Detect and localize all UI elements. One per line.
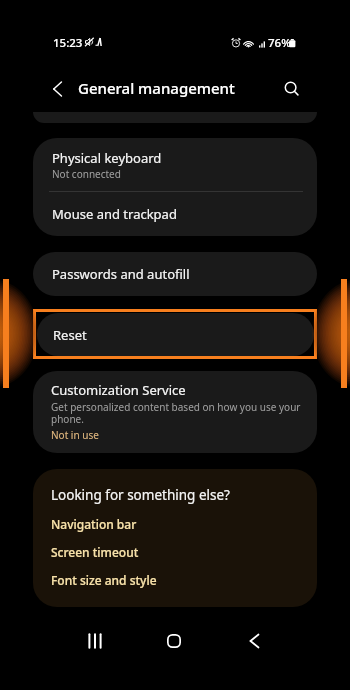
button[interactable]: Home — [151, 621, 196, 661]
staticText: Get personalized content based on how yo… — [51, 400, 301, 426]
button[interactable]: Recent apps — [72, 621, 117, 661]
staticText: Customization Service — [51, 381, 186, 399]
button[interactable]: Passwords and autofill — [33, 252, 317, 296]
staticText: Passwords and autofill — [52, 265, 190, 283]
button[interactable]: Search — [280, 76, 304, 100]
button[interactable]: Screen timeout — [51, 544, 139, 560]
button[interactable]: Mouse and trackpad — [33, 192, 317, 236]
staticText: 76% — [268, 35, 291, 51]
staticText: Not connected — [52, 167, 121, 181]
button[interactable]: Customization Service — [33, 371, 317, 453]
staticText: Not in use — [51, 428, 99, 442]
staticText: Mouse and trackpad — [52, 205, 177, 223]
button[interactable]: Back — [230, 621, 275, 661]
staticText: Looking for something else? — [51, 486, 230, 504]
staticText: 15:23 — [53, 35, 83, 51]
button[interactable]: Reset — [37, 313, 314, 356]
staticText: Physical keyboard — [52, 149, 162, 167]
button[interactable]: Navigation bar — [51, 516, 137, 532]
button[interactable]: Physical keyboard — [33, 138, 317, 191]
button[interactable]: Navigate up — [44, 76, 68, 100]
staticText: Reset — [53, 326, 87, 344]
button[interactable]: Font size and style — [51, 572, 157, 588]
staticText: General management — [78, 78, 235, 98]
